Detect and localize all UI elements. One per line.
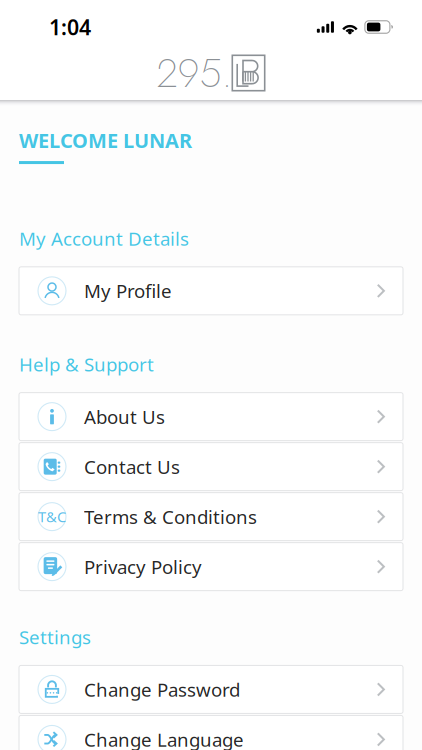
button[interactable]: About Us [19,393,403,441]
button[interactable]: Contact Us [19,443,403,491]
staticText: WELCOME LUNAR [19,127,192,154]
button[interactable]: Privacy Policy [19,543,403,591]
staticText: Privacy Policy [84,554,202,579]
staticText: T&C [38,507,66,526]
button[interactable]: T&C [19,493,403,541]
staticText: Help & Support [19,352,154,377]
staticText: Terms & Conditions [84,504,257,529]
staticText: My Account Details [19,226,189,251]
staticText: 295. [156,44,232,102]
button[interactable]: Change Language [19,715,403,750]
staticText: Contact Us [84,454,180,479]
staticText: About Us [84,404,165,429]
staticText: My Profile [84,278,172,303]
button[interactable]: My Profile [19,267,403,315]
staticText: Change Language [84,727,244,750]
button[interactable]: Change Password [19,665,403,713]
staticText: 1:04 [49,13,91,41]
staticText: Settings [19,625,91,649]
staticText: Change Password [84,677,240,702]
